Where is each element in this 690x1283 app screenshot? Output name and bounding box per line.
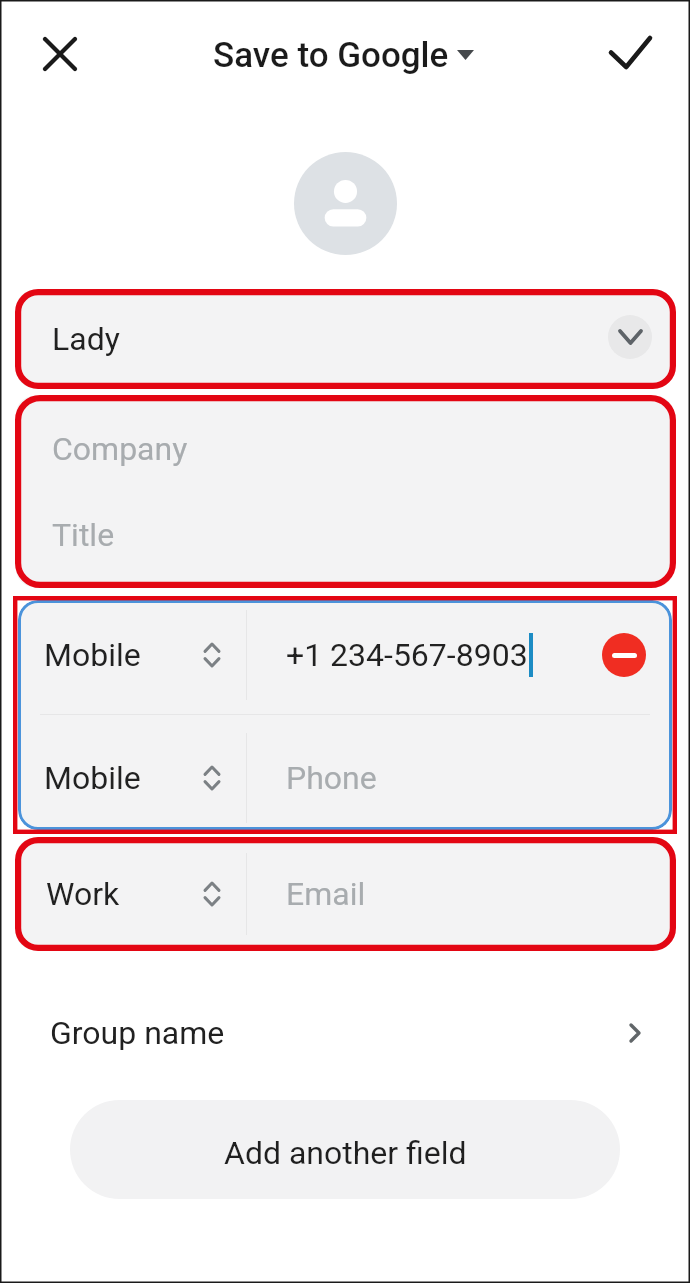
button[interactable]: Mobile — [18, 738, 233, 818]
staticText: Phone — [286, 759, 377, 797]
staticText: Email — [286, 875, 366, 913]
staticText: Group name — [50, 1014, 225, 1052]
button[interactable]: Lady — [16, 290, 674, 388]
staticText: Work — [46, 875, 120, 913]
button[interactable]: Mobile — [18, 615, 233, 695]
button[interactable]: Remove phone number — [602, 633, 646, 677]
staticText: +1 234-567-8903 — [286, 636, 528, 674]
button[interactable]: Add another field — [70, 1100, 620, 1199]
staticText: Lady — [52, 320, 120, 358]
button[interactable]: Company — [16, 396, 674, 587]
button[interactable]: Group name — [0, 998, 690, 1068]
staticText: Add another field — [224, 1134, 467, 1172]
button[interactable]: Expand name — [608, 315, 652, 359]
button[interactable]: Work — [16, 854, 231, 934]
staticText: Mobile — [44, 636, 141, 674]
button[interactable]: Save — [596, 19, 664, 87]
button[interactable]: Work — [16, 838, 674, 950]
staticText: Title — [52, 516, 115, 554]
staticText: Save to Google — [213, 35, 449, 76]
staticText: Company — [52, 430, 188, 468]
staticText: Mobile — [44, 759, 141, 797]
button[interactable]: Close — [26, 19, 94, 87]
